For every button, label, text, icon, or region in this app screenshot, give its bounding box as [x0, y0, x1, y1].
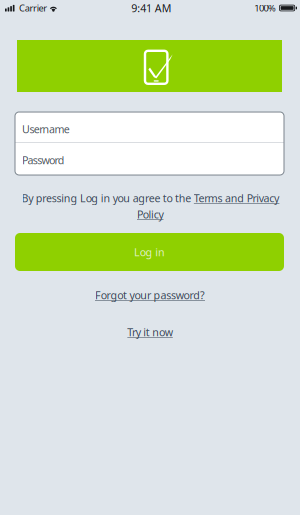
staticText: Policy [137, 207, 163, 221]
staticText: 100% [254, 2, 276, 14]
button[interactable]: Password [15, 143, 284, 175]
button[interactable]: Log in [15, 233, 284, 271]
staticText: Log in [134, 245, 165, 259]
staticText: Try it now [127, 325, 173, 339]
staticText: Username [22, 122, 70, 136]
staticText: 9:41 AM [131, 1, 172, 15]
button[interactable]: Try it now [127, 325, 173, 339]
button[interactable]: Forgot your password? [95, 288, 205, 302]
button[interactable]: Username [15, 112, 284, 142]
staticText: Password [22, 153, 65, 167]
staticText: By pressing Log in you agree to the Term… [21, 191, 279, 205]
staticText: Carrier [19, 2, 47, 14]
staticText: Forgot your password? [95, 288, 205, 302]
